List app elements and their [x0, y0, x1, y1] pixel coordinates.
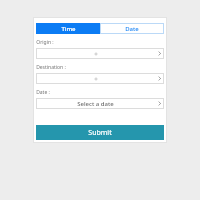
staticText: Date: [125, 25, 139, 33]
button[interactable]: Date: [100, 23, 164, 34]
staticText: Origin :: [36, 39, 54, 46]
staticText: Destination :: [36, 64, 66, 71]
other: Open selector: [155, 73, 164, 84]
button[interactable]: Open selector: [36, 73, 164, 84]
button[interactable]: Select a date: [36, 98, 164, 109]
staticText: Time: [61, 25, 76, 33]
staticText: Select a date: [77, 100, 114, 108]
other: Open selector: [155, 98, 164, 109]
staticText: Date :: [36, 89, 50, 96]
button[interactable]: Open selector: [36, 48, 164, 59]
other: Open selector: [155, 48, 164, 59]
staticText: Submit: [88, 128, 112, 138]
button[interactable]: Submit: [36, 125, 164, 140]
button[interactable]: Time: [36, 23, 100, 34]
